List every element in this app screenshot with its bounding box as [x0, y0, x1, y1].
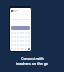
- button[interactable]: [11, 26, 30, 30]
- staticText: Connect with: [21, 56, 44, 61]
- button[interactable]: [28, 48, 30, 50]
- staticText: teachers on the go: [16, 61, 48, 66]
